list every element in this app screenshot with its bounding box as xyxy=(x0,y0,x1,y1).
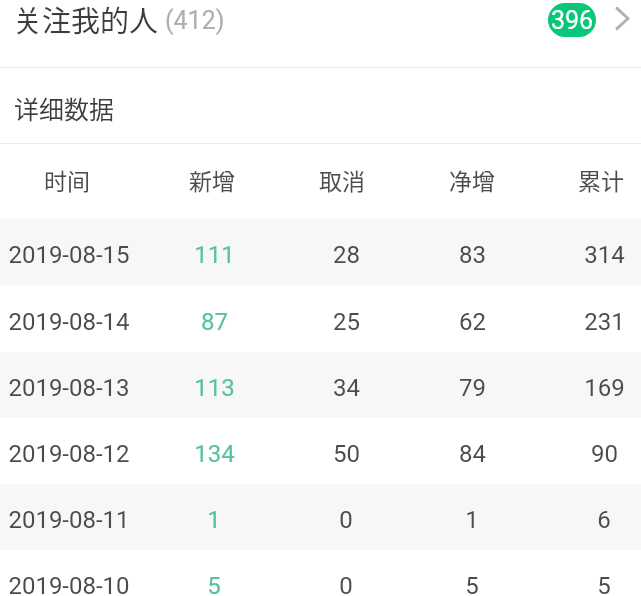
staticText: 0 xyxy=(339,506,353,534)
staticText: 84 xyxy=(459,440,486,468)
button[interactable]: 2019-08-10 xyxy=(0,550,641,596)
button[interactable]: 396 xyxy=(548,3,596,37)
staticText: 34 xyxy=(333,374,360,402)
staticText: 25 xyxy=(333,308,360,336)
staticText: 取消 xyxy=(319,163,365,196)
staticText: 314 xyxy=(584,241,625,269)
button[interactable]: 2019-08-12 xyxy=(0,418,641,484)
staticText: 79 xyxy=(459,374,486,402)
staticText: 396 xyxy=(551,6,594,35)
staticText: 关注我的人 xyxy=(13,0,159,38)
staticText: 169 xyxy=(584,374,625,402)
staticText: 83 xyxy=(459,241,486,269)
staticText: 87 xyxy=(201,308,228,336)
staticText: 2019-08-12 xyxy=(8,440,130,468)
button[interactable]: 关注我的人 xyxy=(0,0,641,67)
staticText: 6 xyxy=(597,506,611,534)
staticText: 62 xyxy=(459,308,486,336)
staticText: 113 xyxy=(194,374,235,402)
staticText: 90 xyxy=(591,440,618,468)
staticText: 50 xyxy=(333,440,360,468)
staticText: (412) xyxy=(165,6,225,35)
staticText: 134 xyxy=(194,440,235,468)
staticText: 净增 xyxy=(449,163,495,196)
staticText: 231 xyxy=(584,308,625,336)
button[interactable]: 2019-08-11 xyxy=(0,484,641,550)
staticText: 2019-08-10 xyxy=(8,572,130,596)
staticText: 2019-08-13 xyxy=(8,374,130,402)
staticText: 2019-08-14 xyxy=(8,308,130,336)
staticText: 5 xyxy=(465,572,479,596)
staticText: 5 xyxy=(207,572,221,596)
staticText: 111 xyxy=(194,241,235,269)
staticText: 28 xyxy=(333,241,360,269)
staticText: 5 xyxy=(597,572,611,596)
button[interactable]: 2019-08-13 xyxy=(0,352,641,418)
staticText: 新增 xyxy=(189,163,235,196)
staticText: 1 xyxy=(465,506,479,534)
button[interactable]: 2019-08-14 xyxy=(0,285,641,352)
button[interactable]: 时间 xyxy=(0,144,641,220)
button[interactable]: Open followers detail xyxy=(606,2,640,36)
staticText: 0 xyxy=(339,572,353,596)
staticText: 1 xyxy=(207,506,221,534)
button[interactable]: 2019-08-15 xyxy=(0,219,641,285)
staticText: 累计 xyxy=(578,163,624,196)
staticText: 详细数据 xyxy=(14,90,115,126)
staticText: 2019-08-11 xyxy=(8,506,130,534)
staticText: 2019-08-15 xyxy=(8,241,130,269)
staticText: 时间 xyxy=(44,163,90,196)
